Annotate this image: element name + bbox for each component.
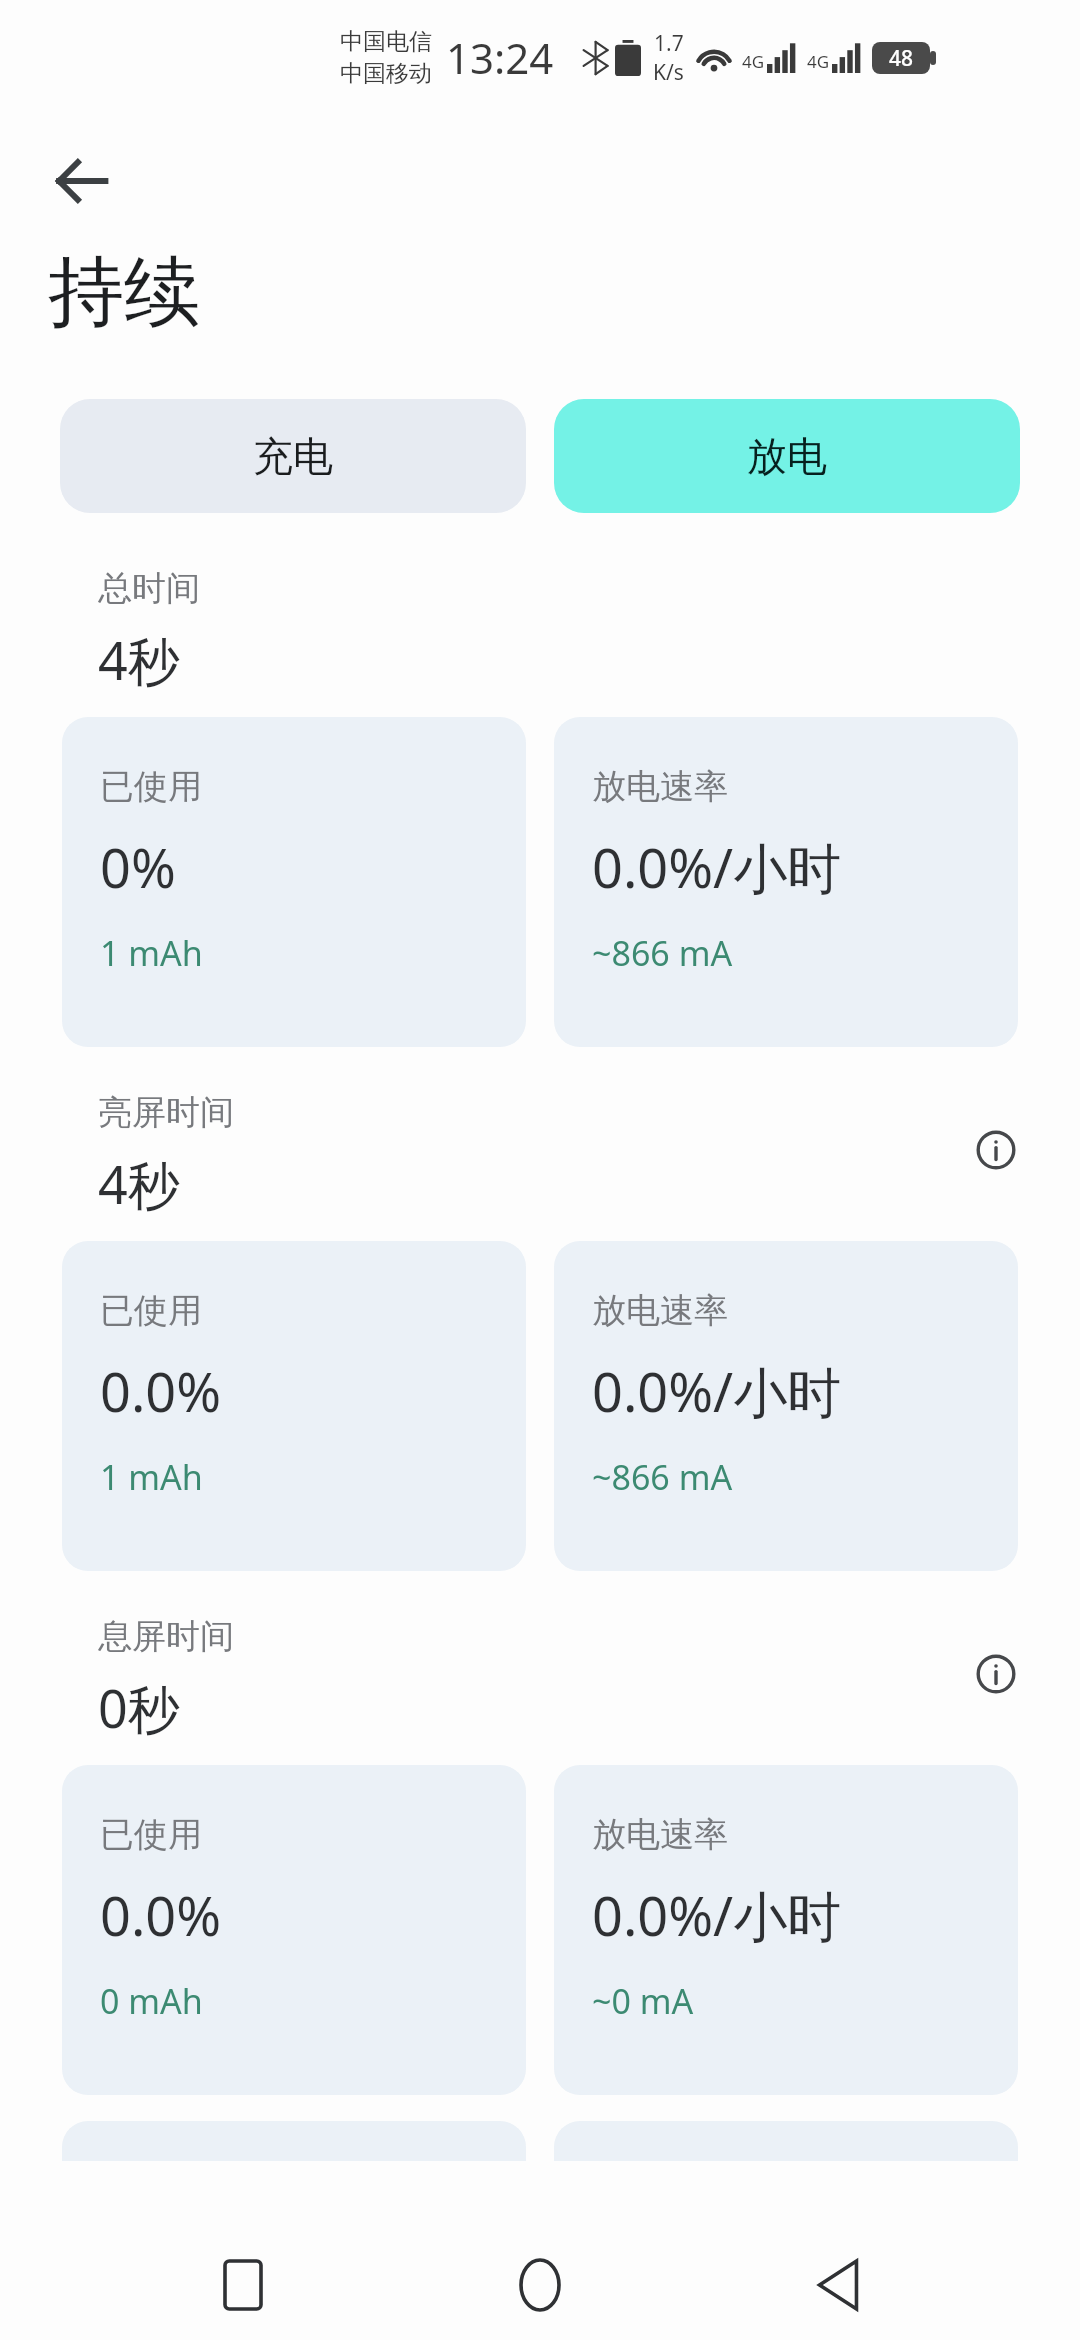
button[interactable]: 已使用 [62,1241,526,1571]
staticText: 持续 [48,245,200,341]
staticText: 0.0% [100,1878,222,1952]
button[interactable]: 放电速率 [554,1241,1018,1571]
staticText: 已使用 [100,1289,202,1332]
staticText: 4秒 [98,1148,180,1219]
staticText: ~866 mA [592,930,733,976]
staticText: 0.0%/小时 [592,830,842,904]
staticText: 4G [742,50,765,73]
staticText: ~0 mA [592,1978,694,2024]
button[interactable]: Info [960,1114,1032,1186]
staticText: 48 [889,44,914,73]
staticText: 0.0%/小时 [592,1878,842,1952]
staticText: 0% [100,830,176,904]
staticText: 放电速率 [592,765,728,808]
button[interactable]: Recent apps [188,2230,298,2340]
staticText: 中国电信 [340,27,432,56]
staticText: 0.0%/小时 [592,1354,842,1428]
staticText: 1.7 [654,29,684,58]
staticText: 0 mAh [100,1978,203,2024]
staticText: 息屏时间 [98,1615,234,1658]
button[interactable]: Home [485,2230,595,2340]
staticText: 0秒 [98,1672,180,1743]
staticText: 放电速率 [592,1289,728,1332]
staticText: 4秒 [98,624,180,695]
staticText: 4G [807,50,830,73]
button[interactable]: Info [960,1638,1032,1710]
button[interactable]: 放电 [554,399,1020,513]
staticText: ~866 mA [592,1454,733,1500]
staticText: 已使用 [100,1813,202,1856]
staticText: 中国移动 [340,59,432,88]
button[interactable]: 放电速率 [554,1765,1018,2095]
staticText: 13:24 [446,29,554,86]
staticText: 放电速率 [592,1813,728,1856]
staticText: 0.0% [100,1354,222,1428]
staticText: 放电 [747,431,827,481]
staticText: 1 mAh [100,1454,203,1500]
button[interactable]: Back [783,2230,893,2340]
staticText: 总时间 [98,567,200,610]
button[interactable]: 已使用 [62,717,526,1047]
button[interactable]: 充电 [60,399,526,513]
staticText: 1 mAh [100,930,203,976]
button[interactable]: 已使用 [62,1765,526,2095]
staticText: 亮屏时间 [98,1091,234,1134]
staticText: K/s [653,58,684,87]
staticText: 充电 [253,431,333,481]
button[interactable]: Back [28,127,136,235]
button[interactable]: 放电速率 [554,717,1018,1047]
staticText: 已使用 [100,765,202,808]
